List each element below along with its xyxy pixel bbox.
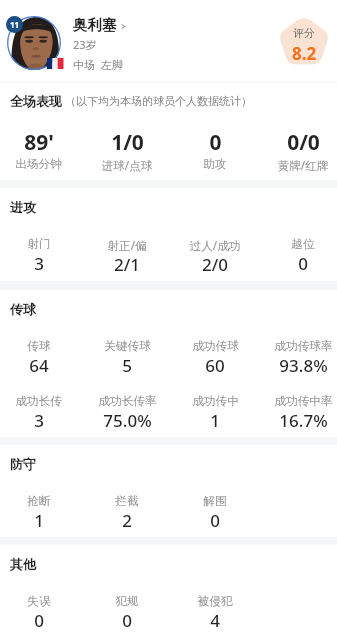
staticText: 0 xyxy=(122,609,132,632)
staticText: 射正/偏 xyxy=(107,237,147,253)
staticText: 4 xyxy=(210,609,220,632)
staticText: 成功长传率 xyxy=(98,394,157,409)
button[interactable]: 成功传球 xyxy=(171,339,259,377)
staticText: 拦截 xyxy=(115,494,139,509)
staticText: 传球 xyxy=(27,339,51,354)
staticText: （以下均为本场的球员个人数据统计） xyxy=(65,94,252,108)
button[interactable]: 拦截 xyxy=(83,494,171,532)
staticText: 8.2 xyxy=(292,42,317,65)
button[interactable]: 89' xyxy=(0,128,83,172)
staticText: 2/1 xyxy=(114,253,140,276)
button[interactable]: 1/0 xyxy=(83,128,171,173)
button[interactable]: 球员头像 11 号 xyxy=(7,16,61,70)
staticText: 传球 xyxy=(10,301,36,317)
staticText: 60 xyxy=(205,354,225,377)
staticText: 中场 左脚 xyxy=(73,57,123,72)
staticText: 1 xyxy=(34,509,44,532)
staticText: 2 xyxy=(122,509,132,532)
staticText: 助攻 xyxy=(203,157,227,172)
button[interactable]: 关键传球 xyxy=(83,339,171,377)
staticText: 过人/成功 xyxy=(189,237,241,253)
staticText: 出场分钟 xyxy=(15,157,62,172)
staticText: 0 xyxy=(34,609,44,632)
staticText: 进球/点球 xyxy=(101,157,153,173)
staticText: 5 xyxy=(122,354,132,377)
staticText: 成功传中率 xyxy=(274,394,333,409)
staticText: 关键传球 xyxy=(104,339,151,354)
staticText: 93.8% xyxy=(279,354,328,377)
staticText: 0 xyxy=(209,128,222,157)
staticText: 防守 xyxy=(10,456,36,472)
staticText: 全场表现 xyxy=(10,93,62,109)
button[interactable]: 失误 xyxy=(0,594,83,632)
button[interactable]: 0 xyxy=(171,128,259,172)
staticText: 评分 xyxy=(293,26,315,40)
button[interactable]: 成功传球率 xyxy=(259,339,337,377)
staticText: 3 xyxy=(34,409,44,432)
button[interactable]: 成功传中 xyxy=(171,394,259,432)
staticText: 成功传球 xyxy=(192,339,239,354)
staticText: 0 xyxy=(298,252,308,275)
staticText: 11 xyxy=(10,19,20,30)
button[interactable]: 成功长传 xyxy=(0,394,83,432)
staticText: 2/0 xyxy=(202,253,228,276)
staticText: 1/0 xyxy=(111,128,144,157)
button[interactable]: 被侵犯 xyxy=(171,594,259,632)
button[interactable]: 奥利塞 xyxy=(73,16,127,34)
button[interactable]: 犯规 xyxy=(83,594,171,632)
button[interactable]: 评分 xyxy=(277,15,331,67)
staticText: 其他 xyxy=(10,556,36,572)
staticText: 23岁 xyxy=(73,37,97,52)
other: 查看球员详情 xyxy=(120,23,127,30)
button[interactable]: 0/0 xyxy=(259,128,337,173)
staticText: 射门 xyxy=(27,237,51,252)
button[interactable]: 射正/偏 xyxy=(83,237,171,276)
staticText: 犯规 xyxy=(115,594,139,609)
button[interactable]: 抢断 xyxy=(0,494,83,532)
staticText: 16.7% xyxy=(279,409,328,432)
button[interactable]: 成功长传率 xyxy=(83,394,171,432)
staticText: 0 xyxy=(210,509,220,532)
staticText: 进攻 xyxy=(10,199,36,215)
staticText: 被侵犯 xyxy=(197,594,233,609)
staticText: 0/0 xyxy=(287,128,320,157)
button[interactable]: 解围 xyxy=(171,494,259,532)
staticText: 奥利塞 xyxy=(73,16,117,34)
button[interactable]: 射门 xyxy=(0,237,83,275)
button[interactable]: 成功传中率 xyxy=(259,394,337,432)
staticText: 64 xyxy=(29,354,49,377)
staticText: 黄牌/红牌 xyxy=(277,157,329,173)
staticText: 75.0% xyxy=(103,409,152,432)
staticText: 成功传中 xyxy=(192,394,239,409)
staticText: 失误 xyxy=(27,594,51,609)
staticText: 成功长传 xyxy=(15,394,62,409)
staticText: 89' xyxy=(24,128,54,157)
staticText: 解围 xyxy=(203,494,227,509)
staticText: 成功传球率 xyxy=(274,339,333,354)
staticText: 越位 xyxy=(291,237,315,252)
button[interactable]: 传球 xyxy=(0,339,83,377)
button[interactable]: 越位 xyxy=(259,237,337,275)
button[interactable]: 奥利塞 球员资料 xyxy=(0,8,270,74)
button[interactable]: 过人/成功 xyxy=(171,237,259,276)
staticText: 1 xyxy=(210,409,220,432)
staticText: 抢断 xyxy=(27,494,51,509)
staticText: 3 xyxy=(34,252,44,275)
